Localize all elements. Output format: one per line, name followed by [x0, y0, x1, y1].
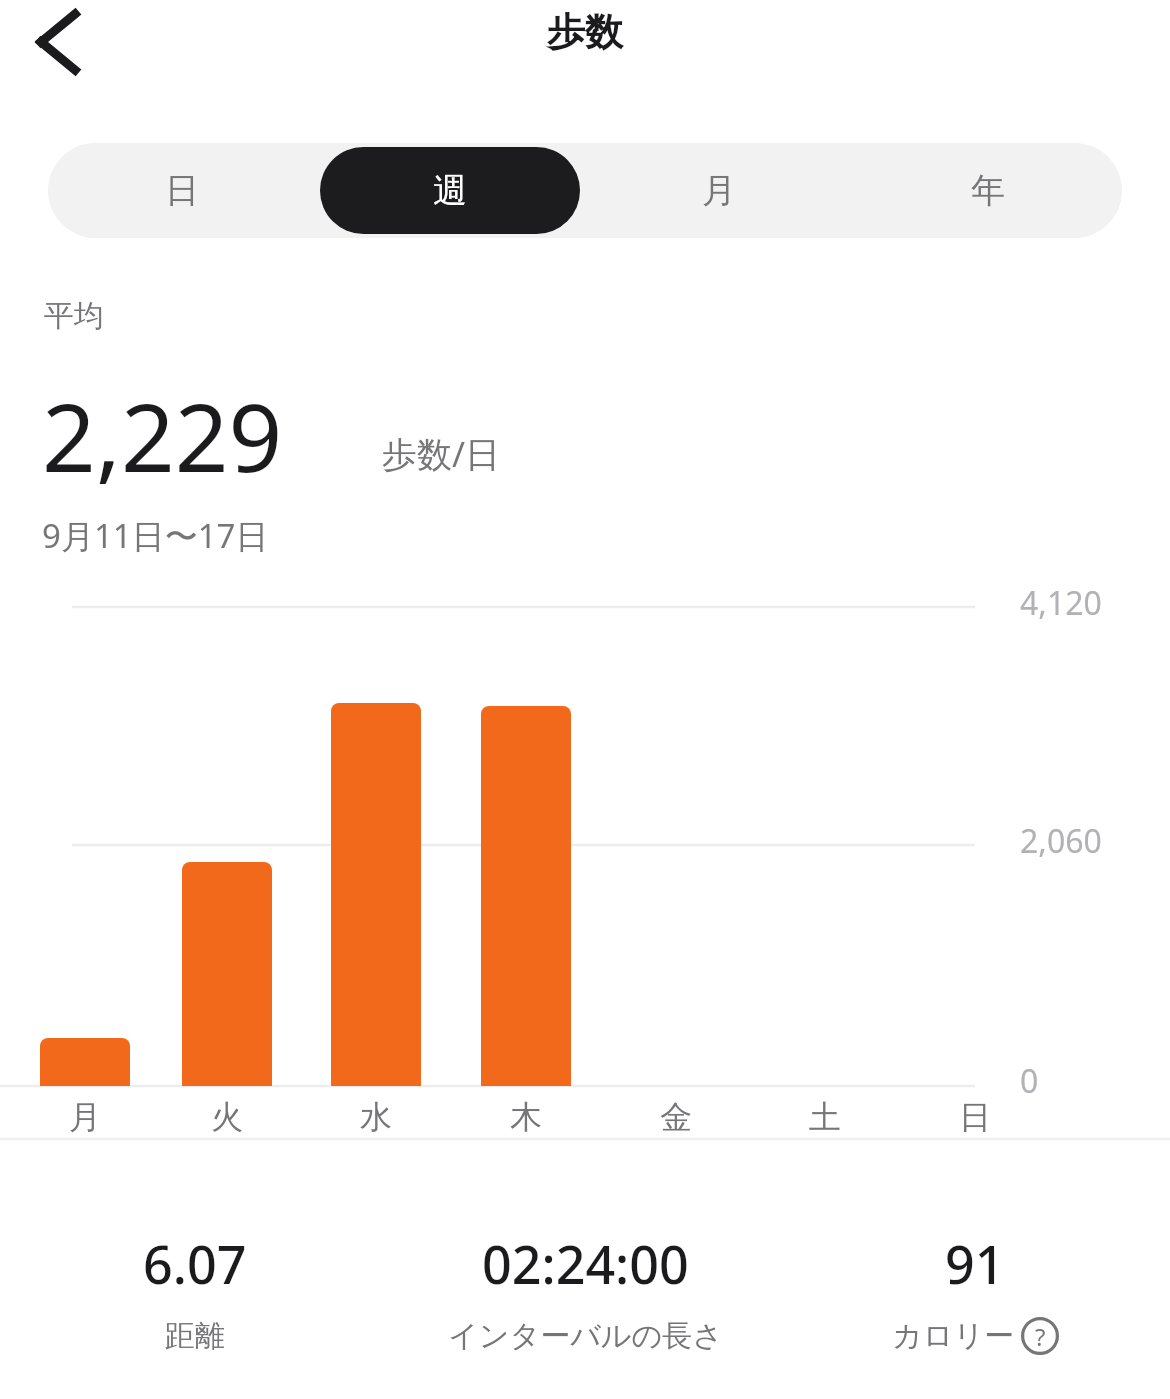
- staticText: 4,120: [1020, 581, 1102, 625]
- staticText: 平均: [44, 297, 104, 335]
- button[interactable]: 日: [52, 147, 312, 234]
- staticText: 木: [481, 1097, 571, 1137]
- staticText: 2,060: [1020, 819, 1102, 863]
- staticText: 月: [702, 169, 736, 212]
- staticText: 土: [780, 1097, 870, 1137]
- staticText: カロリー: [892, 1317, 1015, 1355]
- staticText: 9月11日〜17日: [42, 513, 269, 558]
- staticText: インターバルの長さ: [448, 1317, 723, 1355]
- staticText: 0: [1020, 1059, 1039, 1103]
- button[interactable]: 月: [588, 147, 849, 234]
- staticText: 2,229: [42, 372, 283, 500]
- staticText: 週: [433, 169, 467, 212]
- staticText: 火: [182, 1097, 272, 1137]
- staticText: 年: [971, 169, 1005, 212]
- staticText: ?: [1035, 1320, 1046, 1353]
- staticText: 91: [945, 1228, 1005, 1299]
- staticText: 水: [331, 1097, 421, 1137]
- staticText: 日: [165, 169, 199, 212]
- button[interactable]: Help: [1021, 1317, 1059, 1355]
- staticText: 歩数: [547, 8, 623, 56]
- staticText: 金: [631, 1097, 721, 1137]
- staticText: 02:24:00: [482, 1228, 689, 1299]
- staticText: 歩数/日: [382, 430, 501, 478]
- button[interactable]: Back: [9, 0, 99, 87]
- button[interactable]: 91: [780, 1228, 1170, 1355]
- button[interactable]: 02:24:00: [390, 1228, 780, 1355]
- staticText: 日: [930, 1097, 1020, 1137]
- staticText: 月: [40, 1097, 130, 1137]
- staticText: 距離: [165, 1317, 225, 1355]
- button[interactable]: 年: [857, 147, 1118, 234]
- staticText: 6.07: [143, 1228, 247, 1299]
- button[interactable]: 6.07: [0, 1228, 390, 1355]
- button[interactable]: 週: [320, 147, 580, 234]
